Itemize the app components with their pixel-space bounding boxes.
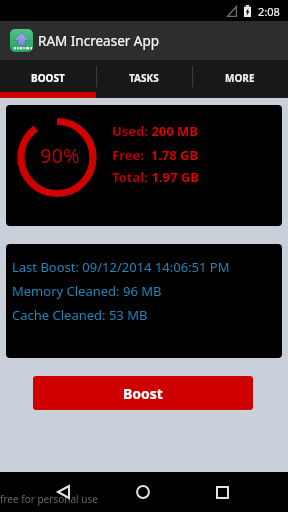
button[interactable]: MORE bbox=[192, 60, 288, 92]
staticText: free for personal use bbox=[0, 492, 98, 506]
button[interactable]: Home bbox=[126, 475, 160, 509]
staticText: BOOST bbox=[31, 71, 65, 85]
staticText: MORE bbox=[225, 71, 255, 85]
button[interactable]: BOOST bbox=[0, 60, 96, 92]
staticText: RAM Increaser App bbox=[38, 32, 160, 50]
button[interactable]: Recents bbox=[205, 475, 239, 509]
staticText: 200 MB bbox=[148, 122, 198, 140]
staticText: Free: bbox=[112, 146, 144, 164]
staticText: Memory Cleaned: 96 MB bbox=[12, 282, 162, 300]
staticText: Boost bbox=[123, 384, 163, 403]
staticText: 2:08 bbox=[258, 4, 280, 19]
staticText: Total: bbox=[112, 168, 148, 186]
button[interactable]: TASKS bbox=[96, 60, 192, 92]
staticText: Used: bbox=[112, 122, 148, 140]
staticText: Last Boost: 09/12/2014 14:06:51 PM bbox=[12, 258, 230, 276]
staticText: TASKS bbox=[129, 71, 159, 85]
button[interactable]: Back bbox=[46, 475, 80, 509]
button[interactable]: Boost bbox=[33, 376, 253, 410]
staticText: 1.78 GB bbox=[144, 146, 199, 164]
staticText: 90% bbox=[40, 142, 80, 169]
staticText: 1.97 GB bbox=[148, 168, 199, 186]
staticText: Cache Cleaned: 53 MB bbox=[12, 306, 148, 324]
